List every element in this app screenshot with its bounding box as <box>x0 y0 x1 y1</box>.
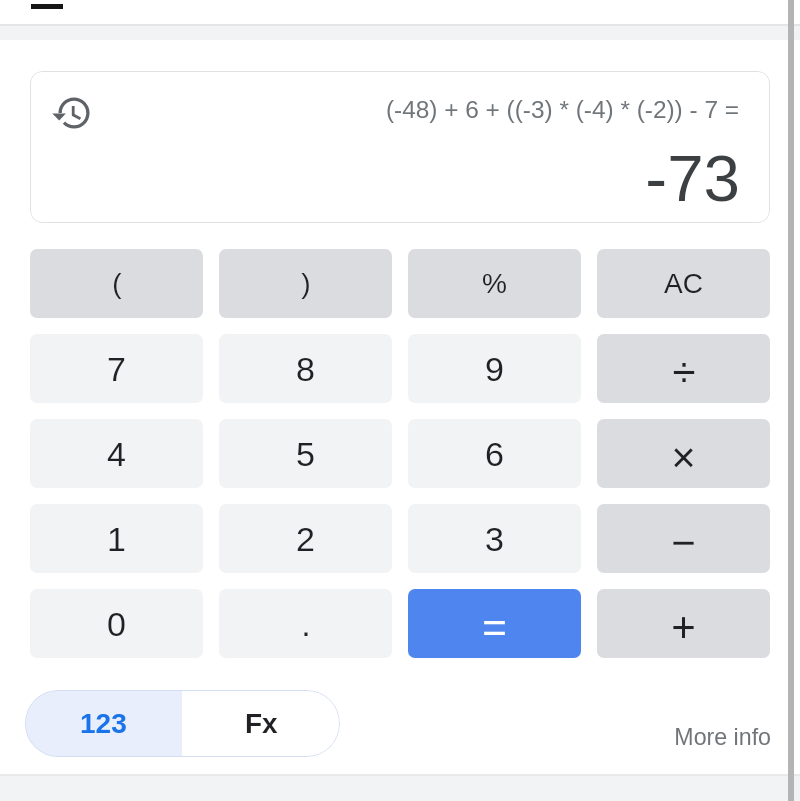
button[interactable]: − <box>597 504 770 573</box>
button[interactable]: History <box>49 88 98 137</box>
staticText: Fx <box>245 708 278 739</box>
staticText: 2 <box>296 520 315 558</box>
button[interactable]: × <box>597 419 770 488</box>
button[interactable]: 2 <box>219 504 392 573</box>
button[interactable]: ÷ <box>597 334 770 403</box>
staticText: 4 <box>107 435 126 473</box>
button[interactable]: Fx <box>182 690 340 757</box>
staticText: + <box>671 604 696 651</box>
button[interactable]: . <box>219 589 392 658</box>
button[interactable]: 1 <box>30 504 203 573</box>
staticText: = <box>482 604 507 651</box>
button[interactable]: + <box>597 589 770 658</box>
staticText: 9 <box>485 350 504 388</box>
button[interactable]: % <box>408 249 581 318</box>
button[interactable]: 123 <box>25 690 182 757</box>
button[interactable]: 4 <box>30 419 203 488</box>
button[interactable]: 0 <box>30 589 203 658</box>
staticText: 5 <box>296 435 315 473</box>
staticText: ) <box>301 268 311 299</box>
staticText: 3 <box>485 520 504 558</box>
staticText: × <box>671 434 696 481</box>
button[interactable]: 3 <box>408 504 581 573</box>
staticText: 0 <box>107 605 126 643</box>
staticText: 7 <box>107 350 126 388</box>
staticText: % <box>482 268 507 299</box>
staticText: -73 <box>300 142 740 215</box>
staticText: . <box>301 605 311 643</box>
button[interactable]: 6 <box>408 419 581 488</box>
button[interactable]: AC <box>597 249 770 318</box>
button[interactable]: 7 <box>30 334 203 403</box>
staticText: AC <box>664 268 703 299</box>
button[interactable]: ( <box>30 249 203 318</box>
staticText: ( <box>112 268 122 299</box>
button[interactable]: = <box>408 589 581 658</box>
button[interactable]: ) <box>219 249 392 318</box>
button[interactable]: 5 <box>219 419 392 488</box>
staticText: − <box>671 519 696 566</box>
staticText: 1 <box>107 520 126 558</box>
staticText: 6 <box>485 435 504 473</box>
staticText: 8 <box>296 350 315 388</box>
button[interactable]: 9 <box>408 334 581 403</box>
staticText: ÷ <box>672 349 696 396</box>
staticText: (-48) + 6 + ((-3) * (-4) * (-2)) - 7 = <box>200 96 739 123</box>
staticText: More info <box>530 724 771 750</box>
button[interactable]: 8 <box>219 334 392 403</box>
staticText: 123 <box>80 708 127 739</box>
button[interactable]: More info <box>530 724 771 750</box>
